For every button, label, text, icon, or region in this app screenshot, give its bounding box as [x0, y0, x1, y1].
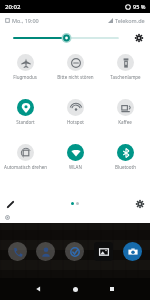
- staticText: Kaffee: [118, 119, 132, 125]
- button[interactable]: Auto brightness: [133, 32, 145, 44]
- staticText: Bitte nicht stören: [57, 74, 94, 80]
- button[interactable]: [0, 212, 150, 223]
- staticText: 95 %: [133, 3, 146, 10]
- staticText: Flugmodus: [13, 74, 37, 80]
- button[interactable]: Automatisch drehen: [0, 139, 50, 184]
- button[interactable]: Flugmodus: [0, 49, 50, 94]
- button[interactable]: [13, 31, 127, 45]
- button[interactable]: Taschenlampe: [100, 49, 150, 94]
- staticText: WLAN: [69, 164, 82, 170]
- button[interactable]: Phone: [8, 242, 27, 261]
- button[interactable]: Contacts: [36, 242, 55, 261]
- staticText: Mo., 19:00: [12, 17, 39, 24]
- staticText: Taschenlampe: [110, 74, 141, 80]
- staticText: Telekom.de: [115, 17, 145, 24]
- button[interactable]: WLAN: [50, 139, 100, 184]
- button[interactable]: Kaffee: [100, 94, 150, 139]
- button[interactable]: Standort: [0, 94, 50, 139]
- button[interactable]: Edit tiles: [4, 198, 16, 210]
- staticText: 20:02: [5, 3, 21, 11]
- staticText: Automatisch drehen: [4, 164, 47, 170]
- button[interactable]: Bitte nicht stören: [50, 49, 100, 94]
- staticText: Bluetooth: [115, 164, 136, 170]
- button[interactable]: Home: [68, 282, 82, 296]
- button[interactable]: Recents: [105, 282, 119, 296]
- button[interactable]: Back: [31, 282, 45, 296]
- staticText: Hotspot: [67, 119, 84, 125]
- button[interactable]: Settings: [134, 198, 146, 210]
- button[interactable]: Bluetooth: [100, 139, 150, 184]
- button[interactable]: Camera: [123, 242, 142, 261]
- button[interactable]: Clock: [65, 242, 84, 261]
- staticText: Standort: [16, 119, 35, 125]
- button[interactable]: Hotspot: [50, 94, 100, 139]
- button[interactable]: Photos: [94, 242, 113, 261]
